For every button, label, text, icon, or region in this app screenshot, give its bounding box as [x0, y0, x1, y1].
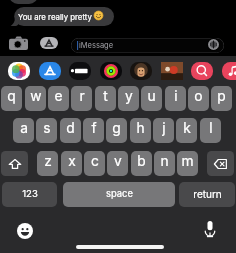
staticText: q: [7, 88, 16, 105]
staticText: h: [136, 120, 145, 137]
button[interactable]: o: [188, 86, 209, 111]
button[interactable]: a: [13, 118, 34, 143]
staticText: z: [44, 153, 52, 170]
staticText: l: [209, 120, 213, 137]
button[interactable]: return: [179, 182, 235, 207]
staticText: w: [30, 88, 42, 105]
button[interactable]: q: [1, 86, 22, 111]
staticText: g: [112, 120, 121, 137]
button[interactable]: Emoji keyboard: [17, 223, 33, 239]
button[interactable]: v: [107, 151, 128, 176]
button[interactable]: k: [176, 118, 197, 143]
staticText: y: [125, 88, 133, 105]
button[interactable]: Audio message: [207, 38, 220, 51]
staticText: s: [43, 120, 51, 137]
staticText: 123: [22, 188, 38, 200]
button[interactable]: l: [200, 118, 221, 143]
staticText: e: [54, 88, 63, 105]
button[interactable]: m: [177, 151, 198, 176]
button[interactable]: App Store: [40, 37, 58, 49]
button[interactable]: 123: [2, 182, 57, 207]
staticText: You are really pretty: [18, 12, 92, 21]
button[interactable]: space: [63, 182, 175, 207]
button[interactable]: e: [48, 86, 69, 111]
staticText: m: [181, 153, 194, 170]
button[interactable]: i: [165, 86, 186, 111]
button[interactable]: Dictation: [203, 220, 217, 238]
button[interactable]: p: [211, 86, 232, 111]
button[interactable]: Shift: [1, 151, 28, 176]
button[interactable]: Photo: [161, 62, 183, 80]
button[interactable]: Backspace: [207, 151, 234, 176]
staticText: r: [79, 88, 85, 105]
button[interactable]: z: [37, 151, 58, 176]
button[interactable]: y: [118, 86, 139, 111]
staticText: o: [194, 88, 203, 105]
staticText: t: [103, 88, 108, 105]
button[interactable]: n: [154, 151, 175, 176]
button[interactable]: d: [60, 118, 81, 143]
button[interactable]: b: [131, 151, 152, 176]
staticText: n: [160, 153, 169, 170]
button[interactable]: Apple Cash: [69, 62, 91, 80]
staticText: d: [66, 120, 75, 137]
staticText: k: [183, 120, 191, 137]
button[interactable]: h: [130, 118, 151, 143]
staticText: c: [91, 153, 99, 170]
staticText: u: [147, 88, 156, 105]
staticText: p: [217, 88, 226, 105]
staticText: a: [20, 120, 28, 137]
button[interactable]: iMessage: [71, 38, 224, 53]
button[interactable]: s: [36, 118, 57, 143]
button[interactable]: w: [25, 86, 46, 111]
button[interactable]: g: [106, 118, 127, 143]
staticText: iMessage: [79, 41, 114, 50]
staticText: x: [68, 153, 76, 170]
staticText: return: [193, 188, 222, 200]
button[interactable]: Music: [222, 62, 236, 80]
button[interactable]: App Store: [39, 62, 61, 80]
button[interactable]: f: [83, 118, 104, 143]
staticText: j: [162, 120, 166, 137]
button[interactable]: t: [95, 86, 116, 111]
button[interactable]: Memoji: [130, 62, 152, 80]
staticText: i: [174, 88, 178, 105]
button[interactable]: c: [84, 151, 105, 176]
staticText: b: [137, 153, 146, 170]
button[interactable]: Camera: [9, 36, 28, 50]
button[interactable]: j: [153, 118, 174, 143]
staticText: space: [106, 188, 133, 199]
button[interactable]: Image search: [191, 62, 213, 80]
button[interactable]: u: [141, 86, 162, 111]
button[interactable]: Photos: [8, 62, 30, 80]
button[interactable]: r: [71, 86, 92, 111]
button[interactable]: x: [61, 151, 82, 176]
staticText: f: [91, 120, 97, 137]
button[interactable]: Fitness: [100, 62, 122, 80]
staticText: v: [114, 153, 122, 170]
